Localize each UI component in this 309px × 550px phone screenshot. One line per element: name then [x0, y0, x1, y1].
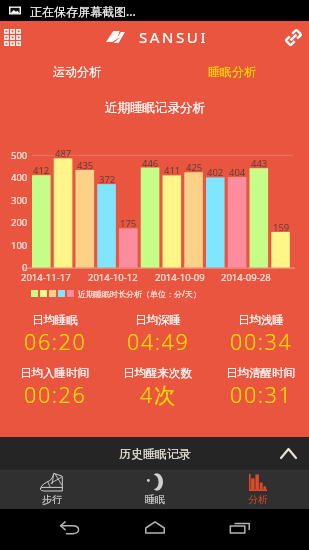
staticText: 日均醒来次数 [123, 366, 192, 380]
button[interactable]: 日均深睡 [106, 313, 209, 361]
staticText: 446 [142, 157, 159, 170]
button[interactable]: Menu [0, 25, 24, 49]
button[interactable]: Recents [221, 509, 258, 546]
staticText: SANSUI [139, 27, 209, 47]
staticText: 04:49 [127, 327, 190, 356]
staticText: 372 [99, 173, 116, 186]
button[interactable]: 历史睡眠记录 [0, 437, 309, 470]
staticText: 分析 [248, 493, 268, 506]
staticText: 步行 [42, 493, 62, 506]
staticText: 425 [186, 161, 203, 174]
staticText: 411 [164, 164, 181, 177]
staticText: 睡眠 [145, 493, 165, 506]
button[interactable]: 分析 [206, 470, 309, 509]
staticText: 435 [77, 159, 94, 172]
staticText: 200 [11, 216, 28, 229]
button[interactable]: 日均醒来次数 [106, 366, 209, 414]
staticText: 日均入睡时间 [20, 366, 89, 380]
button[interactable]: 日均清醒时间 [209, 366, 309, 414]
staticText: 2014-11-17 [21, 271, 71, 284]
staticText: 日均清醒时间 [226, 366, 295, 380]
staticText: 412 [33, 164, 50, 177]
staticText: 睡眠分析 [208, 64, 256, 79]
staticText: 2014-10-12 [88, 271, 138, 284]
staticText: 00:26 [24, 380, 87, 409]
staticText: 175 [120, 217, 137, 230]
button[interactable]: 步行 [0, 470, 103, 509]
staticText: 443 [251, 157, 268, 170]
button[interactable]: Home [136, 509, 173, 546]
button[interactable]: 日均浅睡 [209, 313, 309, 361]
button[interactable]: 日均睡眠 [3, 313, 106, 361]
staticText: 日均深睡 [135, 313, 181, 327]
staticText: 402 [207, 166, 224, 179]
staticText: 300 [11, 194, 28, 207]
staticText: 日均浅睡 [238, 313, 284, 327]
button[interactable]: 睡眠分析 [154, 60, 309, 82]
staticText: 06:20 [24, 327, 87, 356]
staticText: 100 [11, 239, 28, 252]
staticText: 正在保存屏幕截图... [30, 3, 136, 19]
staticText: 500 [11, 149, 28, 162]
staticText: 2014-10-09 [155, 271, 205, 284]
staticText: 00:31 [230, 380, 293, 409]
staticText: 2014-09-28 [221, 271, 271, 284]
staticText: 日均睡眠 [32, 313, 78, 327]
staticText: 近期睡眠时长分析（单位：分/天） [78, 288, 201, 299]
button[interactable]: 睡眠 [103, 470, 206, 509]
staticText: 0 [22, 261, 28, 274]
staticText: 近期睡眠记录分析 [105, 100, 205, 116]
button[interactable]: 运动分析 [0, 60, 154, 82]
staticText: 487 [55, 147, 72, 160]
staticText: 00:34 [230, 327, 293, 356]
staticText: 运动分析 [53, 64, 101, 79]
button[interactable]: Back [51, 509, 88, 546]
staticText: 400 [11, 171, 28, 184]
button[interactable]: 日均入睡时间 [3, 366, 106, 414]
staticText: 历史睡眠记录 [119, 446, 191, 461]
button[interactable]: Link [280, 24, 306, 50]
staticText: 159 [273, 221, 290, 234]
staticText: 4次 [140, 380, 177, 409]
staticText: 404 [229, 166, 246, 179]
